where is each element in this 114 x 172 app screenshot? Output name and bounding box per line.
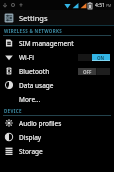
button[interactable]: Toggle off (78, 67, 110, 75)
button[interactable]: Display (0, 130, 114, 144)
staticText: PM (106, 3, 112, 8)
button[interactable]: Data usage (0, 78, 114, 92)
staticText: 4:51 (95, 2, 105, 9)
other: SIM management (5, 39, 13, 47)
button[interactable]: Audio profiles (0, 116, 114, 130)
other: Wi-Fi (5, 53, 13, 61)
staticText: ON (97, 55, 105, 61)
staticText: Audio profiles (19, 119, 62, 128)
staticText: Display (19, 133, 42, 142)
staticText: WIRELESS & NETWORKS (4, 28, 63, 34)
staticText: Data usage (19, 81, 54, 90)
other: Data usage (5, 81, 13, 89)
staticText: Wi-Fi (19, 53, 34, 62)
other: Display (5, 133, 13, 141)
button[interactable]: SIM management (0, 36, 114, 50)
staticText: OFF (83, 69, 92, 75)
other: Storage (5, 147, 13, 155)
staticText: SIM management (19, 39, 74, 48)
button[interactable]: Storage (0, 144, 114, 158)
button[interactable]: Bluetooth (0, 64, 114, 78)
staticText: DEVICE (4, 108, 22, 114)
button[interactable]: Settings (0, 10, 114, 25)
button[interactable]: Wi-Fi (0, 50, 114, 64)
staticText: Bluetooth (19, 67, 50, 76)
other: Audio profiles (5, 119, 13, 127)
other: Bluetooth (5, 67, 13, 75)
staticText: More... (19, 95, 41, 104)
button[interactable]: Toggle on (78, 53, 110, 61)
staticText: Storage (19, 147, 43, 156)
button[interactable]: More... (0, 92, 114, 106)
staticText: Settings (19, 13, 48, 23)
